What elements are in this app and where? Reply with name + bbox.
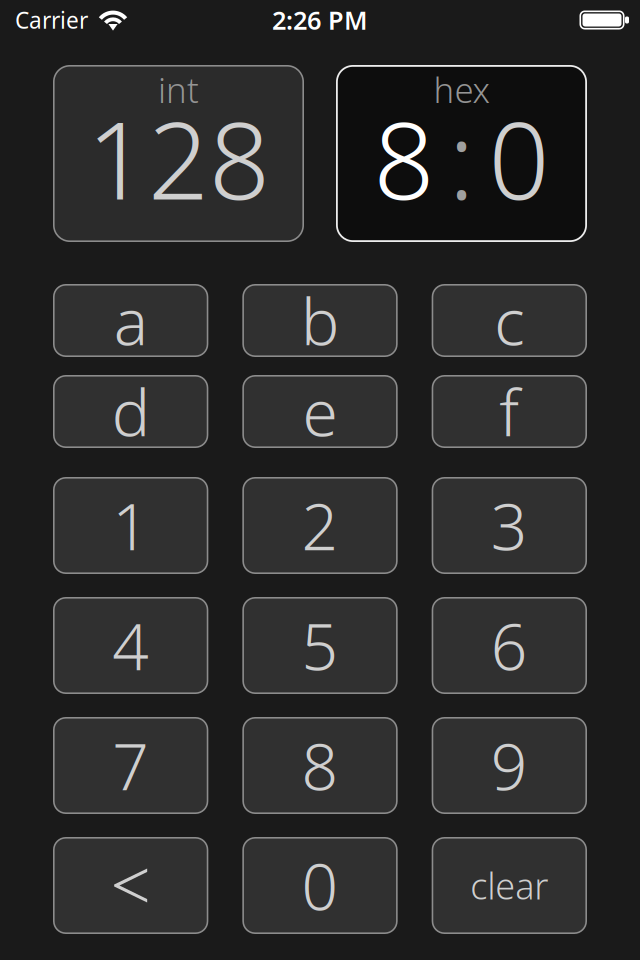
button[interactable]: 3 bbox=[432, 477, 587, 574]
button[interactable]: int bbox=[53, 65, 304, 242]
button[interactable]: c bbox=[432, 284, 587, 357]
staticText: 8 bbox=[373, 87, 434, 229]
staticText: f bbox=[499, 369, 519, 454]
staticText: b bbox=[301, 278, 339, 363]
staticText: int bbox=[158, 66, 199, 112]
staticText: e bbox=[302, 369, 337, 454]
staticText: d bbox=[112, 369, 150, 454]
button[interactable]: b bbox=[242, 284, 398, 357]
button[interactable]: 8 bbox=[242, 717, 398, 814]
button[interactable]: hex bbox=[336, 65, 587, 242]
staticText: 0 bbox=[301, 843, 338, 928]
staticText: clear bbox=[470, 862, 548, 909]
button[interactable]: 9 bbox=[432, 717, 587, 814]
button[interactable]: f bbox=[432, 375, 587, 448]
staticText: 2 bbox=[301, 483, 338, 568]
button[interactable]: 1 bbox=[53, 477, 208, 574]
staticText: 0 bbox=[488, 87, 549, 229]
staticText: : bbox=[448, 87, 474, 229]
button[interactable]: 6 bbox=[432, 597, 587, 694]
button[interactable]: Backspace bbox=[53, 837, 208, 934]
staticText: 9 bbox=[491, 723, 528, 808]
staticText: hex bbox=[433, 66, 489, 112]
button[interactable]: clear bbox=[432, 837, 587, 934]
button[interactable]: 4 bbox=[53, 597, 208, 694]
button[interactable]: 2 bbox=[242, 477, 398, 574]
button[interactable]: a bbox=[53, 284, 208, 357]
staticText: 8 bbox=[301, 723, 338, 808]
staticText: 2:26 PM bbox=[272, 3, 368, 37]
staticText: 3 bbox=[491, 483, 528, 568]
staticText: 1 bbox=[112, 483, 149, 568]
staticText: 4 bbox=[112, 603, 149, 688]
staticText: c bbox=[494, 278, 524, 363]
staticText: 5 bbox=[301, 603, 338, 688]
staticText: 6 bbox=[491, 603, 528, 688]
button[interactable]: 5 bbox=[242, 597, 398, 694]
button[interactable]: d bbox=[53, 375, 208, 448]
button[interactable]: 0 bbox=[242, 837, 398, 934]
button[interactable]: e bbox=[242, 375, 398, 448]
staticText: a bbox=[114, 278, 148, 363]
staticText: Carrier bbox=[15, 5, 88, 35]
staticText: 128 bbox=[87, 87, 270, 229]
button[interactable]: 7 bbox=[53, 717, 208, 814]
staticText: 7 bbox=[112, 723, 149, 808]
